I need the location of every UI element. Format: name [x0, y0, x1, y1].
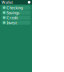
- staticText: Credit: [7, 15, 18, 20]
- button[interactable]: Credit: [2, 15, 30, 20]
- button[interactable]: Invest: [2, 20, 30, 25]
- staticText: Checking: [7, 5, 23, 10]
- button[interactable]: Savings: [2, 10, 30, 15]
- staticText: Invest: [7, 20, 17, 25]
- staticText: Wallet: [2, 0, 13, 5]
- staticText: Savings: [7, 10, 20, 15]
- button[interactable]: Checking: [2, 5, 30, 10]
